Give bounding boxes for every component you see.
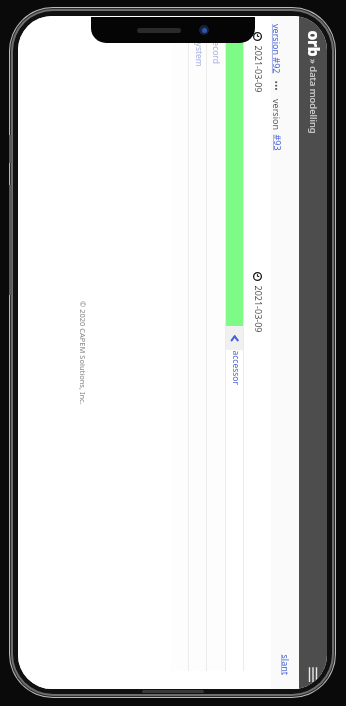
button[interactable]: slant: [279, 654, 291, 675]
button[interactable]: #93: [271, 134, 283, 151]
staticText: system: [192, 38, 204, 67]
button[interactable]: Menu: [299, 661, 327, 689]
button[interactable]: Back: [226, 326, 243, 350]
staticText: » data modelling: [307, 59, 320, 134]
staticText: orb: [303, 30, 324, 56]
staticText: version: [271, 99, 283, 131]
button[interactable]: [226, 30, 243, 326]
staticText: slant: [279, 654, 291, 675]
staticText: •••: [270, 80, 282, 91]
staticText: © 2020 CAPEM Solutions, Inc.: [78, 301, 88, 405]
staticText: accessor: [229, 350, 241, 385]
button[interactable]: accessor: [226, 350, 243, 385]
staticText: record: [210, 38, 222, 64]
staticText: #93: [271, 134, 283, 151]
button[interactable]: version #92: [271, 24, 283, 74]
button[interactable]: record: [207, 38, 225, 64]
staticText: 2021-03-09: [252, 285, 264, 332]
button[interactable]: system: [189, 38, 206, 67]
staticText: version #92: [271, 24, 283, 74]
staticText: 2021-03-09: [252, 45, 264, 92]
button[interactable]: orb: [299, 26, 327, 134]
